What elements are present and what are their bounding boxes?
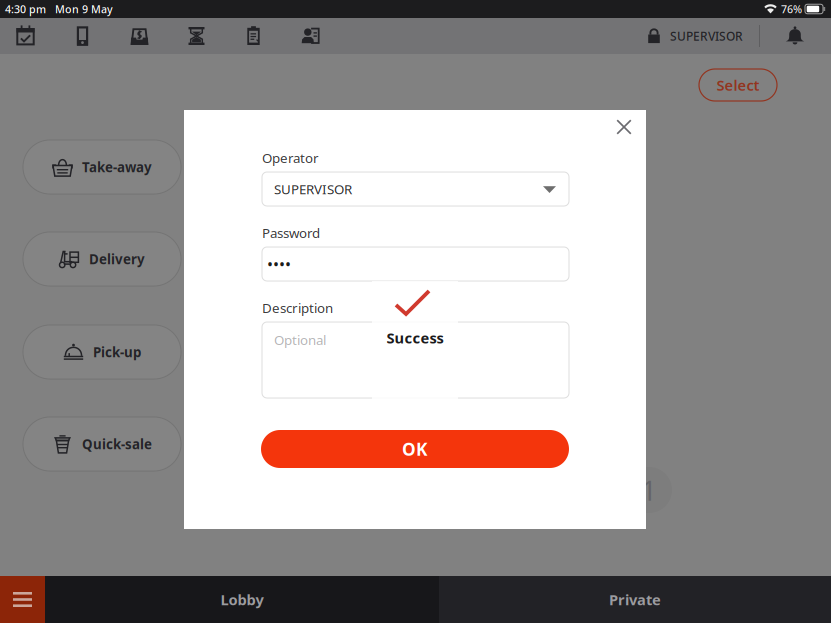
staticText: SUPERVISOR xyxy=(274,180,352,198)
button[interactable]: Menu xyxy=(0,576,45,623)
staticText: Mon 9 May xyxy=(55,2,113,16)
staticText: Quick-sale xyxy=(82,435,152,453)
staticText: 76% xyxy=(781,2,802,16)
button[interactable]: Customers xyxy=(282,18,339,54)
staticText: Lobby xyxy=(220,590,263,609)
staticText: Private xyxy=(609,590,661,609)
staticText: Success xyxy=(386,328,443,347)
button[interactable]: Take-away xyxy=(23,140,181,194)
staticText: Operator xyxy=(262,149,319,167)
button[interactable]: OK xyxy=(261,430,569,468)
staticText: Delivery xyxy=(89,250,145,268)
staticText: Take-away xyxy=(82,158,152,176)
staticText: 1 xyxy=(641,471,657,509)
staticText: SUPERVISOR xyxy=(670,28,743,44)
button[interactable]: Order list xyxy=(225,18,282,54)
button[interactable]: Pick-up xyxy=(23,325,181,379)
button[interactable]: Bookings xyxy=(0,18,54,54)
button[interactable]: Private xyxy=(439,576,831,623)
button[interactable]: Close xyxy=(607,110,641,144)
button[interactable]: Pending orders xyxy=(168,18,225,54)
staticText: •••• xyxy=(267,253,291,275)
staticText: Password xyxy=(262,224,320,242)
button[interactable]: Cash drawer xyxy=(111,18,168,54)
staticText: OK xyxy=(402,437,428,460)
staticText: Description xyxy=(262,299,333,317)
staticText: 4:30 pm xyxy=(5,2,46,16)
staticText: Select xyxy=(716,75,759,95)
button[interactable]: Quick-sale xyxy=(23,417,181,471)
button[interactable]: Device xyxy=(54,18,111,54)
button[interactable]: Lobby xyxy=(45,576,439,623)
button[interactable]: SUPERVISOR xyxy=(638,18,753,54)
button[interactable]: Delivery xyxy=(23,232,181,286)
staticText: Optional xyxy=(274,331,326,349)
button[interactable]: Notifications xyxy=(774,18,816,54)
button[interactable]: Select xyxy=(699,69,777,101)
staticText: Pick-up xyxy=(93,343,141,361)
